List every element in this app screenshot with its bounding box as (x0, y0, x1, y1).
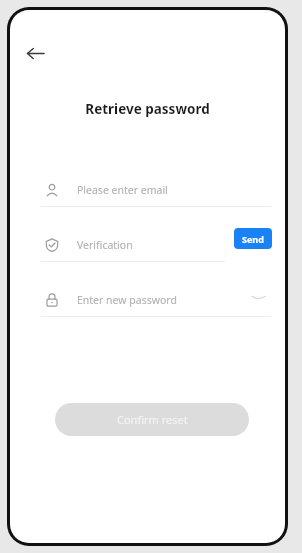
staticText: Confirm reset (117, 412, 188, 427)
button[interactable]: Email field (41, 173, 272, 206)
button[interactable]: Verification code field (41, 228, 272, 261)
staticText: Please enter email (77, 183, 168, 197)
button[interactable]: Back (15, 33, 55, 73)
button[interactable]: Confirm reset (55, 403, 249, 436)
button[interactable]: New password field (41, 283, 272, 316)
button[interactable]: Show password (244, 283, 272, 311)
staticText: Verification (77, 238, 133, 252)
staticText: Send (242, 233, 264, 245)
staticText: Enter new password (77, 293, 177, 307)
button[interactable]: Send (234, 228, 272, 249)
staticText: Retrieve password (10, 100, 285, 118)
